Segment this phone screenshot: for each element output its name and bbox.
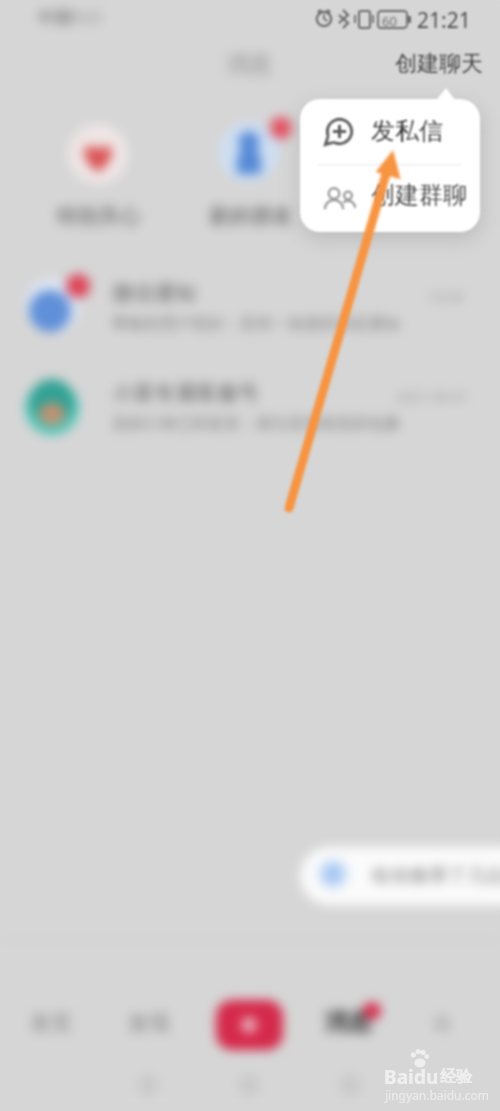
staticText: 创建群聊 xyxy=(371,180,467,210)
staticText: 发私信 xyxy=(371,116,443,146)
button[interactable]: 创建群聊 xyxy=(300,165,480,232)
staticText: 创建聊天 xyxy=(395,50,483,78)
button[interactable]: 创建聊天 xyxy=(387,43,491,85)
button[interactable]: 发私信 xyxy=(300,99,480,164)
